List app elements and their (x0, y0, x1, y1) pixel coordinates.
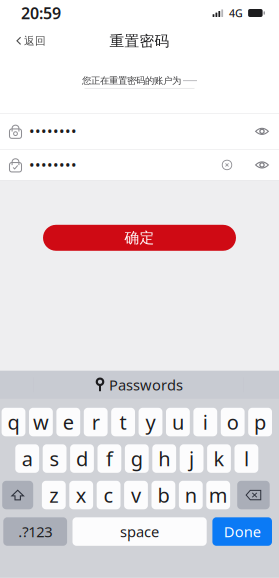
button[interactable]: b (151, 481, 175, 509)
staticText: k (213, 445, 224, 472)
staticText: d (76, 445, 88, 472)
staticText: 您正在重置密码的账户为 (82, 75, 181, 86)
staticText: f (106, 445, 113, 472)
staticText: o (227, 409, 239, 435)
staticText: •••••••• (29, 155, 77, 175)
button[interactable]: n (179, 481, 203, 509)
staticText: g (131, 445, 143, 472)
staticText: b (157, 482, 169, 508)
button[interactable]: l (234, 444, 258, 473)
button[interactable]: j (180, 444, 203, 473)
button[interactable]: k (207, 444, 231, 473)
button[interactable]: i (193, 408, 217, 436)
staticText: a (22, 445, 33, 472)
button[interactable]: z (42, 481, 66, 509)
button[interactable]: e (56, 408, 80, 436)
staticText: z (49, 482, 58, 508)
staticText: i (203, 409, 208, 435)
staticText: w (33, 409, 49, 435)
staticText: x (76, 482, 87, 508)
staticText: c (104, 482, 114, 508)
staticText: q (7, 409, 19, 435)
button[interactable]: Done (212, 517, 272, 546)
button[interactable]: p (248, 408, 272, 436)
staticText: 返回 (24, 34, 46, 47)
staticText: s (50, 445, 60, 472)
button[interactable]: s (43, 444, 66, 473)
staticText: y (145, 409, 155, 435)
staticText: j (189, 445, 194, 472)
button[interactable]: y (139, 408, 162, 436)
staticText: n (185, 482, 197, 508)
button[interactable]: f (97, 444, 121, 473)
staticText: 4G (229, 6, 243, 20)
button[interactable]: Show password (248, 149, 276, 180)
button[interactable]: c (97, 481, 120, 509)
staticText: space (120, 522, 159, 541)
staticText: m (209, 482, 228, 508)
button[interactable]: m (206, 481, 230, 509)
staticText: l (244, 445, 249, 472)
button[interactable]: u (166, 408, 190, 436)
button[interactable]: Show password (248, 116, 276, 147)
button[interactable]: v (124, 481, 148, 509)
button[interactable]: Passwords (0, 371, 279, 399)
staticText: u (172, 409, 184, 435)
staticText: 20:59 (21, 2, 61, 24)
button[interactable]: q (2, 408, 25, 436)
button[interactable]: Shift (2, 481, 33, 509)
button[interactable]: x (69, 481, 93, 509)
button[interactable]: a (15, 444, 39, 473)
staticText: v (131, 482, 141, 508)
button[interactable]: o (221, 408, 245, 436)
staticText: Passwords (109, 375, 183, 395)
button[interactable]: space (72, 517, 207, 546)
button[interactable]: Delete (237, 481, 270, 509)
button[interactable]: t (111, 408, 135, 436)
button[interactable]: Clear text (216, 150, 238, 180)
staticText: t (120, 409, 127, 435)
button[interactable]: .?123 (3, 517, 67, 546)
button[interactable]: g (125, 444, 149, 473)
staticText: .?123 (18, 522, 52, 541)
button[interactable]: 返回 (0, 26, 56, 56)
button[interactable]: r (84, 408, 108, 436)
staticText: r (92, 409, 100, 435)
button[interactable]: w (29, 408, 53, 436)
staticText: e (63, 409, 74, 435)
staticText: 确定 (124, 229, 154, 247)
staticText: h (158, 445, 170, 472)
staticText: p (254, 409, 266, 435)
staticText: 重置密码 (109, 32, 169, 50)
button[interactable]: 确定 (43, 225, 236, 251)
button[interactable]: d (70, 444, 94, 473)
button[interactable]: h (152, 444, 176, 473)
staticText: •••••••• (29, 122, 77, 141)
staticText: Done (224, 522, 261, 541)
